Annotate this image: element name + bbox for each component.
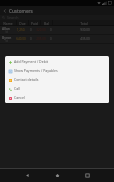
staticText: 0 (50, 28, 52, 32)
staticText: 435.00 (80, 37, 90, 41)
staticText: Contact details (14, 77, 39, 82)
button[interactable]: Bal (41, 20, 52, 26)
button[interactable]: Navigate up (0, 6, 9, 15)
button[interactable]: Paid (29, 20, 40, 26)
staticText: Search (7, 15, 19, 20)
staticText: 0 (30, 28, 32, 32)
staticText: ltd (5, 39, 9, 43)
button[interactable]: Recent apps (82, 170, 93, 181)
button[interactable]: Call (5, 84, 109, 93)
button[interactable]: Show Payments / Payables (5, 66, 109, 75)
button[interactable]: Home (52, 170, 63, 181)
staticText: Total (80, 21, 88, 25)
button[interactable]: Add Payment / Debit (5, 57, 109, 66)
button[interactable]: Name (0, 20, 16, 26)
staticText: Customers (9, 8, 33, 14)
button[interactable]: Contact details (5, 75, 109, 84)
staticText: Paid (31, 21, 38, 25)
staticText: 320.00 (36, 28, 46, 32)
staticText: 1,250.00 (16, 28, 26, 32)
staticText: 0 (30, 37, 32, 41)
staticText: Byron Mccarthy (2, 35, 16, 39)
staticText: Call (14, 86, 20, 91)
button[interactable]: Cancel (5, 93, 109, 102)
staticText: Due (19, 21, 26, 25)
button[interactable]: Byron Mccarthy (0, 35, 114, 44)
staticText: 640.00 (16, 37, 26, 41)
staticText: 205.00 (36, 37, 46, 41)
button[interactable]: Due (17, 20, 28, 26)
button[interactable]: Allan Jones (0, 26, 114, 35)
staticText: 0 (50, 37, 52, 41)
button[interactable]: Back (22, 170, 33, 181)
staticText: ltd (5, 30, 9, 34)
staticText: Bal (44, 21, 49, 25)
staticText: Show Payments / Payables (14, 68, 58, 73)
staticText: Name (3, 21, 13, 25)
button[interactable]: Total (53, 20, 114, 26)
staticText: 930.00 (80, 28, 90, 32)
staticText: Allan Jones (2, 26, 16, 30)
staticText: Cancel (14, 95, 25, 100)
staticText: Add Payment / Debit (14, 59, 48, 64)
